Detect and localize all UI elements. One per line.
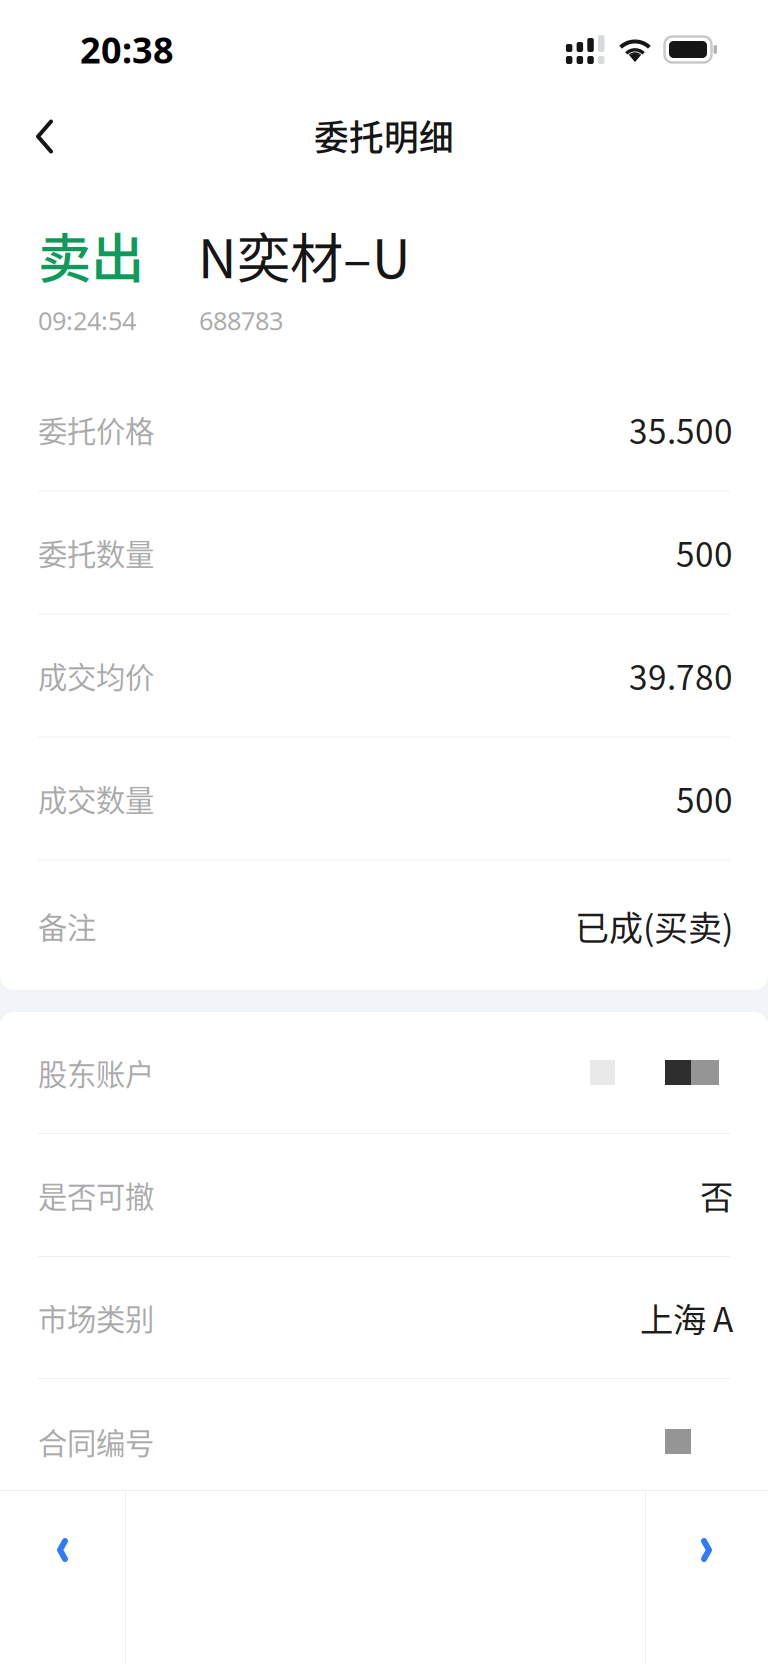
staticText: 委托价格 — [38, 408, 154, 451]
staticText: 35.500 — [629, 405, 733, 454]
staticText: 否 — [700, 1171, 733, 1219]
staticText: 09:24:54 — [38, 304, 136, 337]
staticText: 500 — [676, 774, 733, 823]
button[interactable]: Back — [0, 94, 87, 176]
staticText: 已成(买卖) — [575, 901, 733, 951]
staticText: 委托数量 — [38, 531, 154, 574]
staticText: 卖出 — [38, 216, 144, 294]
staticText: N奕材–U — [198, 216, 410, 294]
button[interactable]: Next order — [645, 1491, 768, 1609]
button[interactable]: Previous order — [0, 1491, 125, 1609]
staticText: 市场类别 — [38, 1296, 154, 1339]
staticText: 股东账户 — [38, 1051, 154, 1094]
staticText: 成交数量 — [38, 777, 154, 820]
staticText: 39.780 — [629, 651, 733, 700]
staticText: 20:38 — [80, 26, 174, 73]
staticText: 成交均价 — [38, 654, 154, 697]
staticText: 500 — [676, 528, 733, 577]
staticText: 688783 — [199, 304, 283, 337]
staticText: 上海 A — [640, 1293, 733, 1342]
staticText: 是否可撤 — [38, 1174, 154, 1216]
staticText: 委托明细 — [314, 110, 454, 161]
staticText: 备注 — [38, 905, 96, 947]
staticText: 合同编号 — [38, 1420, 154, 1463]
